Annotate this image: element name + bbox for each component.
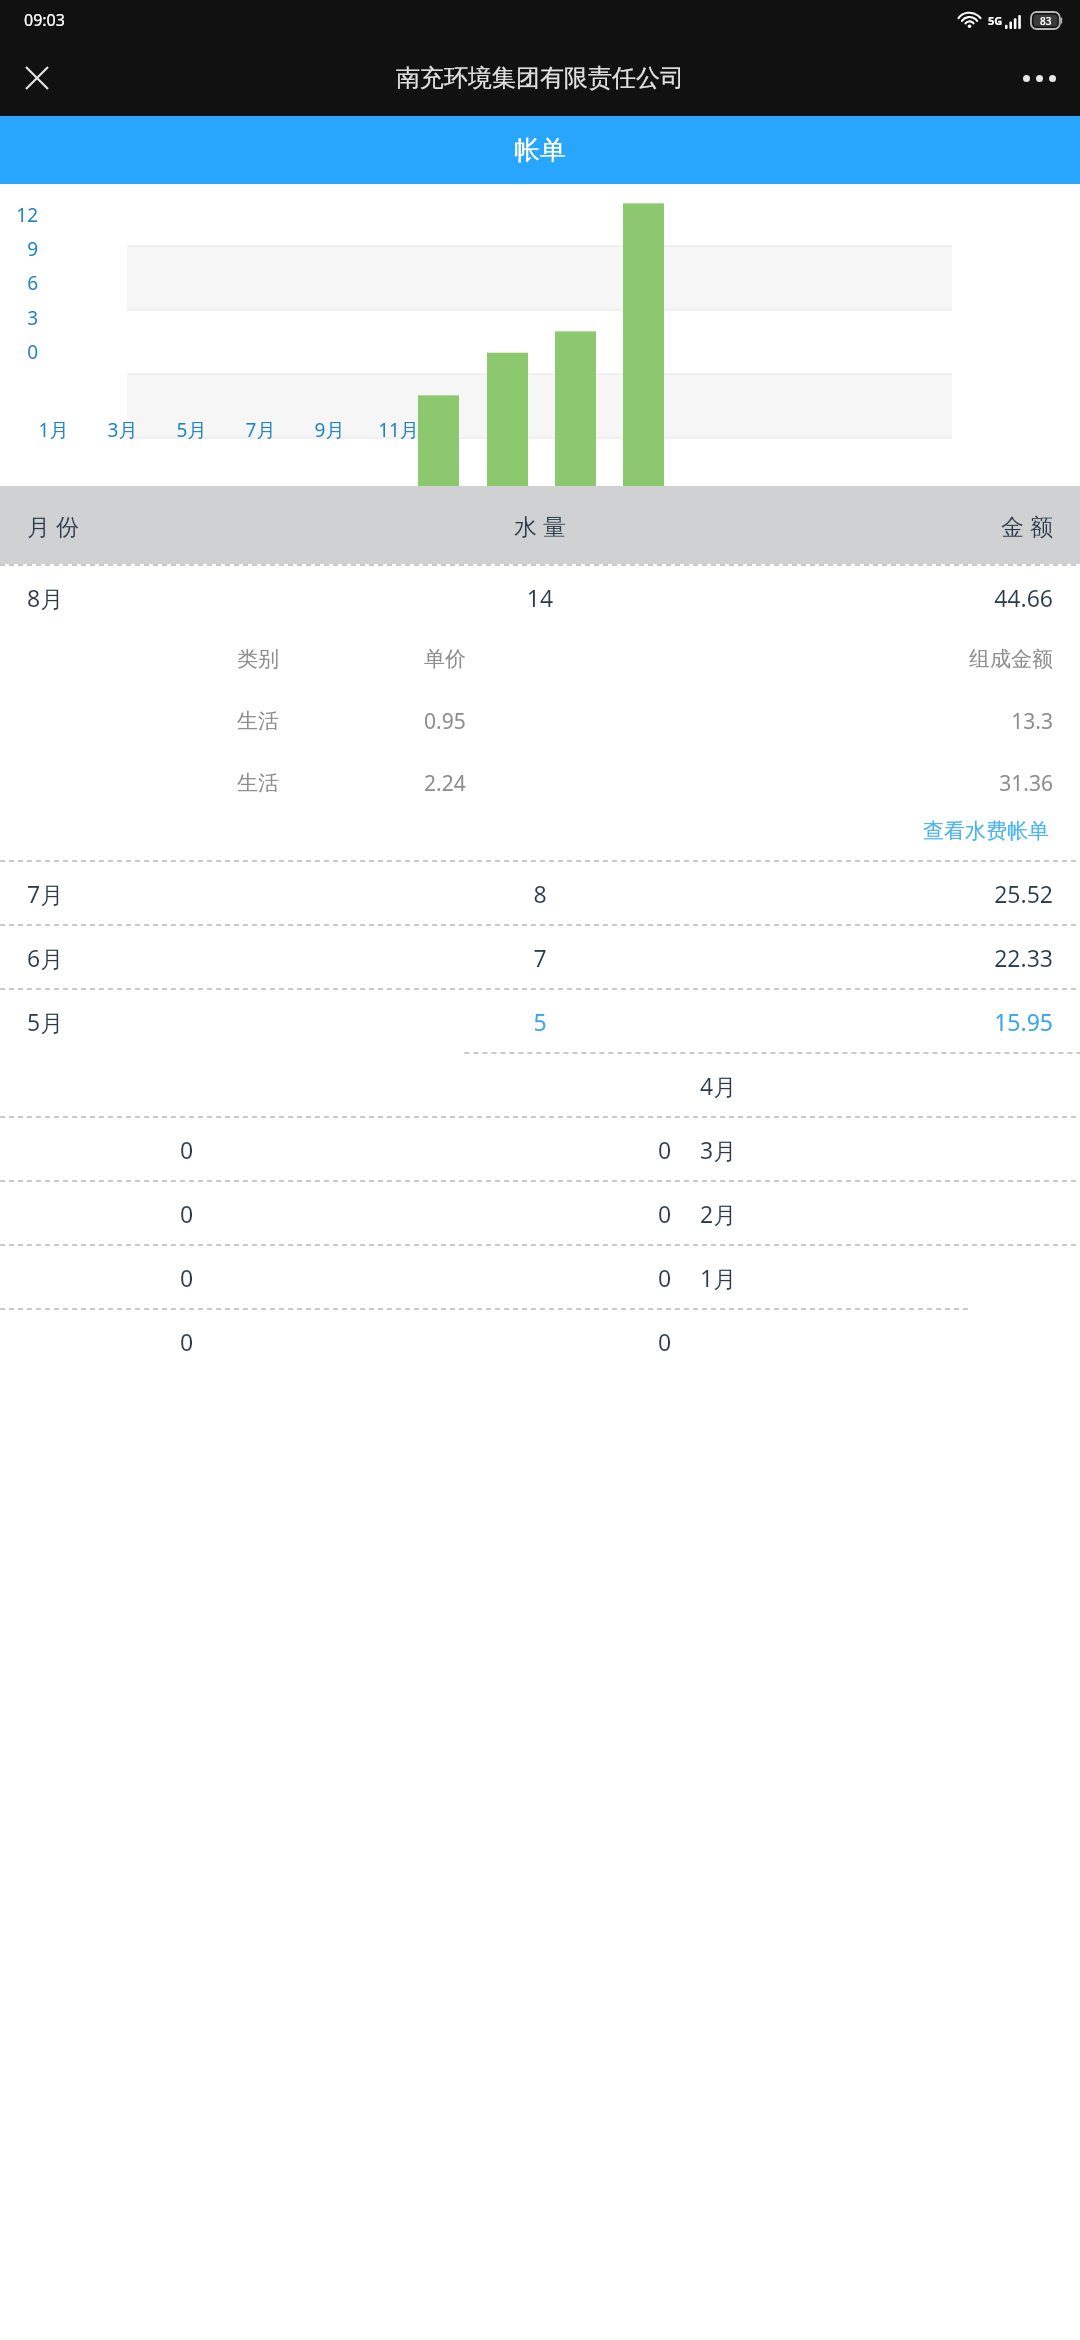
staticText: 09:03 [24, 9, 65, 31]
staticText: 0 [658, 1326, 672, 1357]
staticText: 5 [369, 1006, 711, 1037]
staticText: 15.95 [711, 1006, 1053, 1037]
staticText: 25.52 [711, 878, 1053, 909]
staticText: 1月 [700, 1262, 737, 1293]
staticText: 金 额 [711, 510, 1053, 541]
staticText: 5月 [169, 417, 214, 443]
button[interactable]: 6月 [0, 926, 1080, 988]
staticText: 83 [1040, 14, 1052, 28]
staticText: 0 [180, 1262, 194, 1293]
staticText: 0 [658, 1262, 672, 1293]
staticText: 5G [988, 13, 1003, 28]
staticText: 2月 [700, 1198, 737, 1229]
staticText: 2.24 [424, 769, 679, 798]
staticText: 31.36 [679, 769, 1053, 798]
staticText: 12 [0, 202, 38, 228]
staticText: 9月 [307, 417, 352, 443]
staticText: 5月 [27, 1006, 369, 1037]
staticText: 7 [369, 942, 711, 973]
button[interactable]: 0 [0, 1246, 1080, 1308]
staticText: 6月 [27, 942, 369, 973]
staticText: 22.33 [711, 942, 1053, 973]
button[interactable]: 查看水费帐单 [919, 814, 1053, 848]
staticText: 单价 [424, 646, 679, 672]
staticText: 查看水费帐单 [923, 818, 1049, 844]
button[interactable]: More options [1010, 49, 1068, 107]
button[interactable]: 0 [0, 1310, 1080, 1372]
staticText: 8 [369, 878, 711, 909]
staticText: 0 [0, 339, 38, 365]
staticText: 0 [658, 1134, 672, 1165]
button[interactable]: 0 [0, 1182, 1080, 1244]
staticText: 类别 [237, 646, 424, 672]
staticText: 0 [658, 1198, 672, 1229]
staticText: 月 份 [27, 510, 369, 541]
staticText: 14 [369, 582, 711, 613]
staticText: 44.66 [711, 582, 1053, 613]
staticText: 7月 [27, 878, 369, 909]
button[interactable]: 5月 [0, 990, 1080, 1052]
staticText: 6 [0, 270, 38, 296]
button[interactable]: 7月 [0, 862, 1080, 924]
staticText: 0.95 [424, 707, 679, 736]
staticText: 13.3 [679, 707, 1053, 736]
staticText: 生活 [237, 770, 424, 796]
staticText: 3月 [100, 417, 145, 443]
staticText: 0 [180, 1198, 194, 1229]
button[interactable]: Close [8, 49, 66, 107]
staticText: 11月 [376, 417, 421, 443]
staticText: 帐单 [514, 134, 566, 167]
staticText: 3月 [700, 1134, 737, 1165]
button[interactable]: 0 [0, 1118, 1080, 1180]
staticText: 0 [180, 1326, 194, 1357]
staticText: 3 [0, 305, 38, 331]
button[interactable]: 帐单 [0, 116, 1080, 184]
staticText: 水 量 [369, 510, 711, 541]
staticText: 1月 [31, 417, 76, 443]
staticText: 生活 [237, 708, 424, 734]
staticText: 9 [0, 236, 38, 262]
staticText: 组成金额 [679, 646, 1053, 672]
staticText: 4月 [700, 1070, 737, 1101]
staticText: 7月 [238, 417, 283, 443]
staticText: 0 [180, 1134, 194, 1165]
button[interactable]: 8月 [0, 566, 1080, 628]
button[interactable]: 4月 [0, 1054, 1080, 1116]
staticText: 8月 [27, 582, 369, 613]
staticText: 南充环境集团有限责任公司 [396, 63, 684, 93]
